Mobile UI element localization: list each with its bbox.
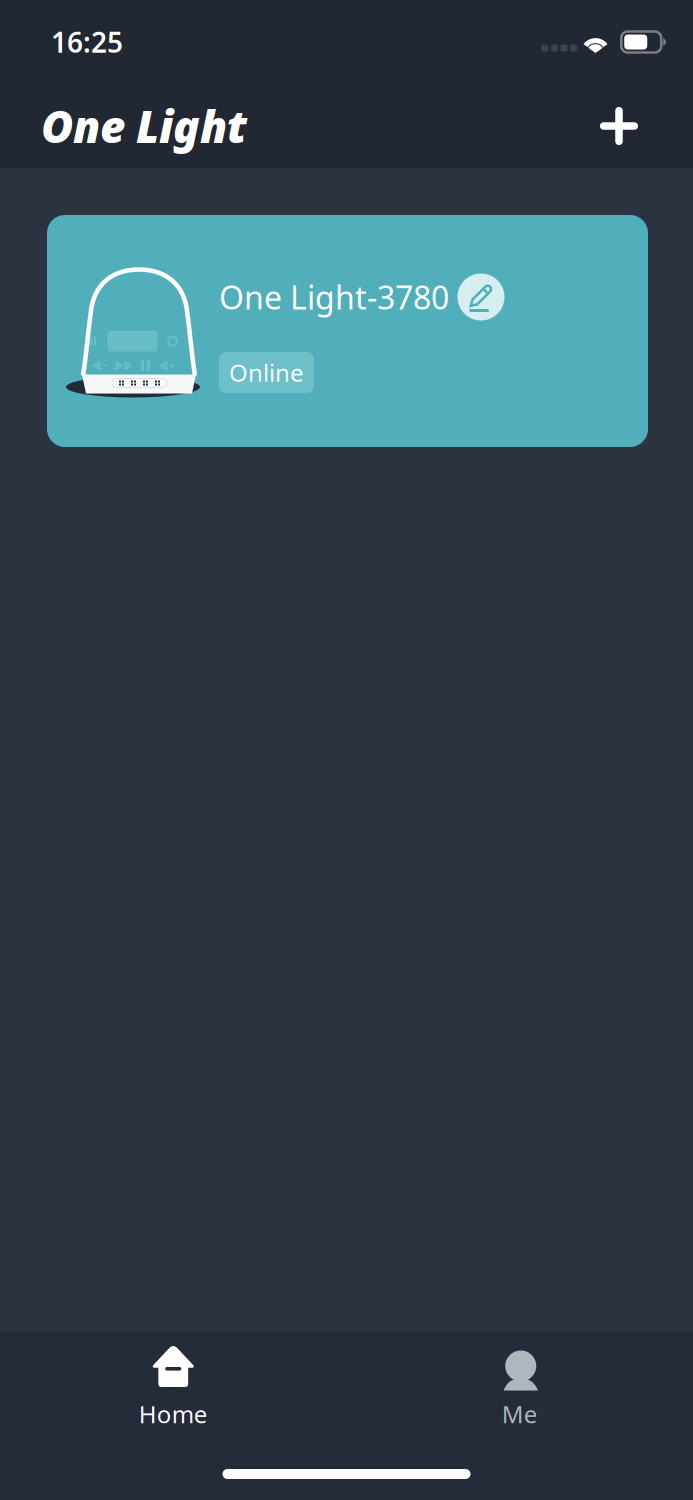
staticText: Online	[229, 357, 304, 388]
button[interactable]: Home	[0, 1346, 346, 1430]
staticText: One Light	[41, 97, 247, 155]
staticText: Home	[139, 1398, 208, 1430]
staticText: 16:25	[51, 23, 123, 61]
button[interactable]: Add device	[592, 99, 646, 153]
staticText: One Light-3780	[219, 276, 449, 318]
staticText: Me	[502, 1398, 538, 1430]
button[interactable]: One Light-3780	[47, 215, 648, 447]
button[interactable]: Me	[346, 1346, 693, 1430]
button[interactable]: Rename device	[454, 270, 508, 324]
